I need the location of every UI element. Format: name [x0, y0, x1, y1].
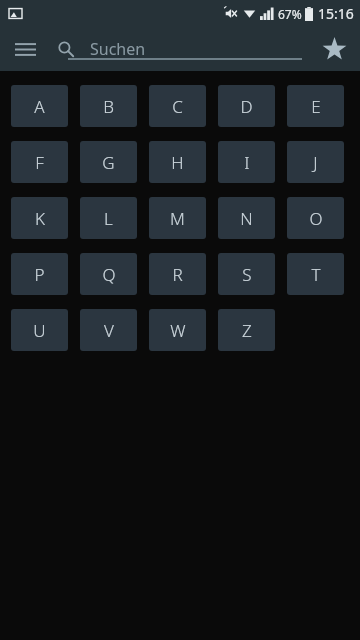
staticText: 15:16: [318, 4, 354, 23]
staticText: Suchen: [90, 38, 146, 60]
staticText: S: [242, 263, 252, 286]
button[interactable]: C: [149, 85, 206, 127]
button[interactable]: H: [149, 141, 206, 183]
staticText: R: [172, 263, 183, 286]
staticText: D: [240, 95, 253, 118]
button[interactable]: Q: [80, 253, 137, 295]
button[interactable]: M: [149, 197, 206, 239]
staticText: I: [244, 151, 250, 174]
staticText: 67%: [278, 6, 302, 22]
button[interactable]: V: [80, 309, 137, 351]
button[interactable]: Z: [218, 309, 275, 351]
button[interactable]: S: [218, 253, 275, 295]
button[interactable]: B: [80, 85, 137, 127]
staticText: C: [172, 95, 183, 118]
staticText: M: [170, 207, 185, 230]
button[interactable]: Suchen: [58, 31, 302, 67]
staticText: F: [35, 151, 44, 174]
button[interactable]: G: [80, 141, 137, 183]
button[interactable]: O: [287, 197, 344, 239]
button[interactable]: I: [218, 141, 275, 183]
button[interactable]: W: [149, 309, 206, 351]
staticText: A: [34, 95, 45, 118]
staticText: P: [34, 263, 45, 286]
button[interactable]: P: [11, 253, 68, 295]
button[interactable]: J: [287, 141, 344, 183]
button[interactable]: D: [218, 85, 275, 127]
staticText: O: [309, 207, 323, 230]
staticText: U: [33, 319, 46, 342]
staticText: E: [311, 95, 321, 118]
staticText: V: [104, 319, 114, 342]
button[interactable]: U: [11, 309, 68, 351]
button[interactable]: N: [218, 197, 275, 239]
button[interactable]: E: [287, 85, 344, 127]
button[interactable]: Favoriten: [317, 32, 351, 66]
staticText: G: [102, 151, 115, 174]
button[interactable]: Menü: [8, 32, 42, 66]
button[interactable]: R: [149, 253, 206, 295]
button[interactable]: F: [11, 141, 68, 183]
button[interactable]: K: [11, 197, 68, 239]
staticText: J: [313, 151, 318, 174]
button[interactable]: T: [287, 253, 344, 295]
button[interactable]: L: [80, 197, 137, 239]
staticText: K: [35, 207, 45, 230]
staticText: W: [170, 319, 186, 342]
staticText: T: [311, 263, 321, 286]
staticText: H: [171, 151, 184, 174]
staticText: Q: [102, 263, 116, 286]
staticText: Z: [242, 319, 252, 342]
staticText: N: [240, 207, 253, 230]
staticText: B: [103, 95, 114, 118]
staticText: L: [104, 207, 113, 230]
button[interactable]: A: [11, 85, 68, 127]
